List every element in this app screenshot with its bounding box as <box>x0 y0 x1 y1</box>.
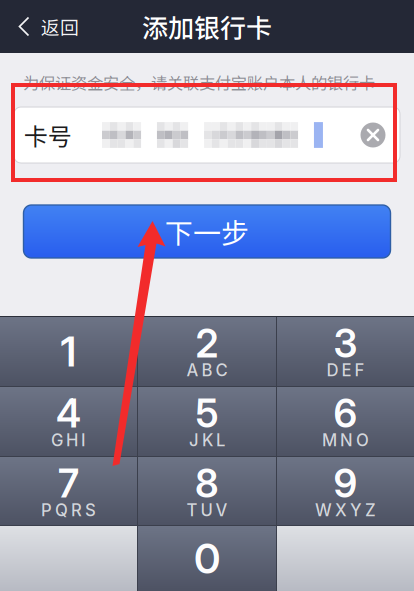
staticText: G H I <box>51 430 86 450</box>
staticText: 返回 <box>41 13 79 40</box>
staticText: T U V <box>186 500 227 520</box>
staticText: 3 <box>333 320 357 367</box>
staticText: 0 <box>194 533 220 583</box>
staticText: 添加银行卡 <box>142 8 272 45</box>
staticText: 1 <box>60 326 76 376</box>
staticText: D E F <box>326 360 364 380</box>
staticText: 6 <box>333 390 357 437</box>
button[interactable]: Clear card number <box>346 107 400 163</box>
staticText: W X Y Z <box>315 500 376 520</box>
staticText: 8 <box>195 460 219 507</box>
button[interactable]: 9 <box>277 457 414 525</box>
staticText: 7 <box>58 460 79 507</box>
button[interactable]: Hide keyboard <box>0 526 137 591</box>
button[interactable]: 5 <box>138 387 276 456</box>
staticText: 5 <box>195 390 218 437</box>
button[interactable]: 6 <box>277 387 414 456</box>
staticText: 下一步 <box>165 211 249 252</box>
staticText: 卡号 <box>24 118 72 152</box>
button[interactable]: Delete <box>277 526 414 591</box>
button[interactable]: 7 <box>0 457 137 525</box>
button[interactable]: 0 <box>138 526 276 591</box>
staticText: 4 <box>56 390 81 437</box>
button[interactable]: 下一步 <box>23 205 390 258</box>
button[interactable]: 1 <box>0 317 137 386</box>
button[interactable]: 3 <box>277 317 414 386</box>
staticText: A B C <box>186 360 227 380</box>
staticText: J K L <box>189 430 225 450</box>
staticText: P Q R S <box>41 500 96 520</box>
staticText: 9 <box>333 460 357 507</box>
button[interactable]: 4 <box>0 387 137 456</box>
button[interactable]: 8 <box>138 457 276 525</box>
button[interactable]: 返回 <box>0 0 91 53</box>
staticText: 为保证资金安全，请关联支付宝账户本人的银行卡 <box>23 71 375 94</box>
button[interactable]: 2 <box>138 317 276 386</box>
staticText: M N O <box>322 430 369 450</box>
staticText: 2 <box>195 320 218 367</box>
